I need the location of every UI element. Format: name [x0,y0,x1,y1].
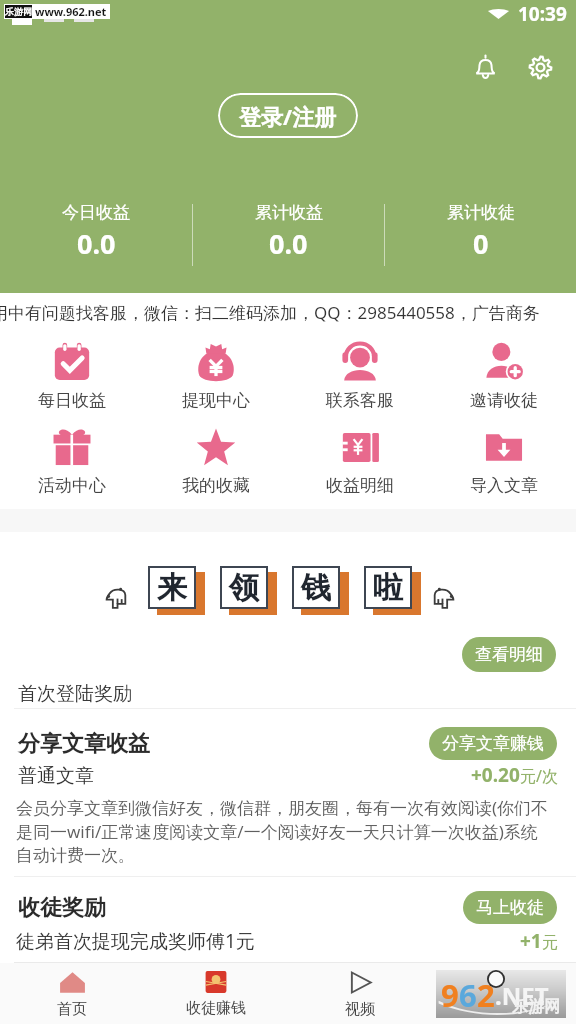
button[interactable]: 视频 [288,969,432,1019]
staticText: 0.0 [77,225,116,262]
staticText: 10:39 [518,1,567,27]
button[interactable]: 累计收徒 [385,202,576,262]
staticText: 6 [459,974,477,1016]
button[interactable]: Notifications [463,45,507,89]
staticText: 徒弟首次提现完成奖师傅1元 [16,928,255,954]
staticText: 收益明细 [326,475,394,496]
button[interactable]: 分享文章赚钱 [429,727,557,760]
staticText: 收徒奖励 [18,894,106,922]
staticText: 视频 [345,1000,375,1019]
staticText: 联系客服 [326,390,394,411]
staticText: www.962.net [35,4,107,19]
button[interactable]: 联系客服 [288,332,432,417]
button[interactable]: 首页 [0,969,144,1019]
staticText: 首次登陆奖励 [18,682,132,706]
staticText: 乐游网 [512,997,560,1017]
button[interactable]: 收益明细 [288,417,432,502]
staticText: 来 [157,569,187,607]
staticText: 元/次 [520,765,558,787]
staticText: 收徒赚钱 [186,999,246,1018]
staticText: 元 [542,933,558,953]
staticText: 活动中心 [38,475,106,496]
staticText: 会员分享文章到微信好友，微信群，朋友圈，每有一次有效阅读(你们不是同一wifi/… [16,796,550,866]
button[interactable]: 导入文章 [432,417,576,502]
staticText: 我的收藏 [182,475,250,496]
staticText: 今日收益 [62,202,130,223]
staticText: 0 [473,225,489,262]
staticText: 2 [477,974,495,1016]
button[interactable]: 邀请收徒 [432,332,576,417]
staticText: +0.20 [471,762,520,788]
staticText: 9 [441,974,459,1016]
staticText: 每日收益 [38,390,106,411]
button[interactable]: 每日收益 [0,332,144,417]
button[interactable]: 提现中心 [144,332,288,417]
staticText: 啦 [373,569,403,607]
button[interactable]: 登录/注册 [218,93,358,138]
staticText: 钱 [301,569,331,607]
button[interactable]: 活动中心 [0,417,144,502]
staticText: .NET [495,979,549,1012]
staticText: 马上收徒 [476,897,544,918]
staticText: 登录/注册 [239,101,337,131]
button[interactable]: 累计收益 [193,202,384,262]
staticText: 导入文章 [470,475,538,496]
staticText: 分享文章收益 [18,730,150,758]
button[interactable]: 马上收徒 [463,891,557,924]
staticText: 累计收益 [255,202,323,223]
staticText: 普通文章 [18,764,94,788]
staticText: 领 [229,569,259,607]
staticText: +1 [520,928,542,954]
button[interactable]: 查看明细 [462,637,556,672]
staticText: 查看明细 [475,644,543,665]
button[interactable]: Settings [518,45,562,89]
staticText: 用中有问题找客服，微信：扫二维码添加，QQ：2985440558，广告商务 [0,301,540,324]
button[interactable]: 收徒赚钱 [144,969,288,1018]
staticText: 提现中心 [182,390,250,411]
staticText: 0.0 [269,225,308,262]
staticText: 邀请收徒 [470,390,538,411]
staticText: 累计收徒 [447,202,515,223]
button[interactable]: 今日收益 [0,202,192,262]
staticText: 分享文章赚钱 [442,733,544,754]
staticText: 乐游网 [5,6,32,17]
button[interactable]: 我的收藏 [144,417,288,502]
staticText: 首页 [57,1000,87,1019]
